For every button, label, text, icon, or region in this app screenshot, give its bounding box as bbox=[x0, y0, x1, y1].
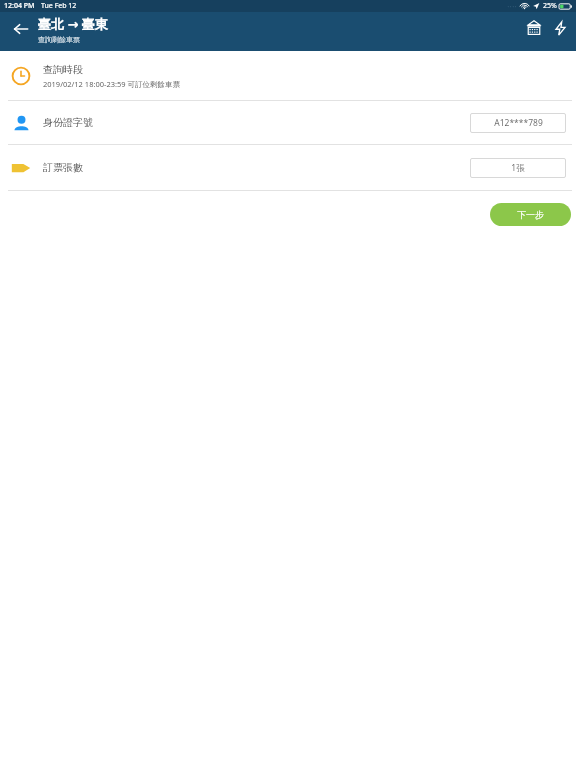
button[interactable]: 身份證字號 bbox=[0, 101, 576, 144]
staticText: 12:04 PM bbox=[4, 1, 35, 11]
staticText: 臺北 → 臺東 bbox=[38, 15, 108, 33]
button[interactable]: 查詢時段 bbox=[0, 51, 576, 100]
staticText: A12****789 bbox=[494, 117, 543, 129]
button[interactable]: Ticket machine bbox=[522, 16, 546, 40]
button[interactable]: A12****789 bbox=[470, 113, 566, 133]
button[interactable]: 下一步 bbox=[490, 203, 571, 226]
staticText: 查詢剩餘車票 bbox=[38, 35, 80, 44]
staticText: 下一步 bbox=[517, 209, 544, 220]
staticText: 2019/02/12 18:00-23:59 可訂位剩餘車票 bbox=[43, 79, 181, 89]
staticText: 25% bbox=[543, 1, 557, 11]
staticText: 身份證字號 bbox=[43, 116, 93, 129]
button[interactable]: Back bbox=[8, 16, 34, 42]
staticText: 查詢時段 bbox=[43, 63, 83, 76]
button[interactable]: 1張 bbox=[470, 158, 566, 178]
button[interactable]: Quick booking bbox=[548, 16, 572, 40]
staticText: 訂票張數 bbox=[43, 161, 83, 174]
button[interactable]: 訂票張數 bbox=[0, 145, 576, 190]
staticText: Tue Feb 12 bbox=[41, 1, 77, 11]
staticText: 1張 bbox=[511, 162, 525, 174]
